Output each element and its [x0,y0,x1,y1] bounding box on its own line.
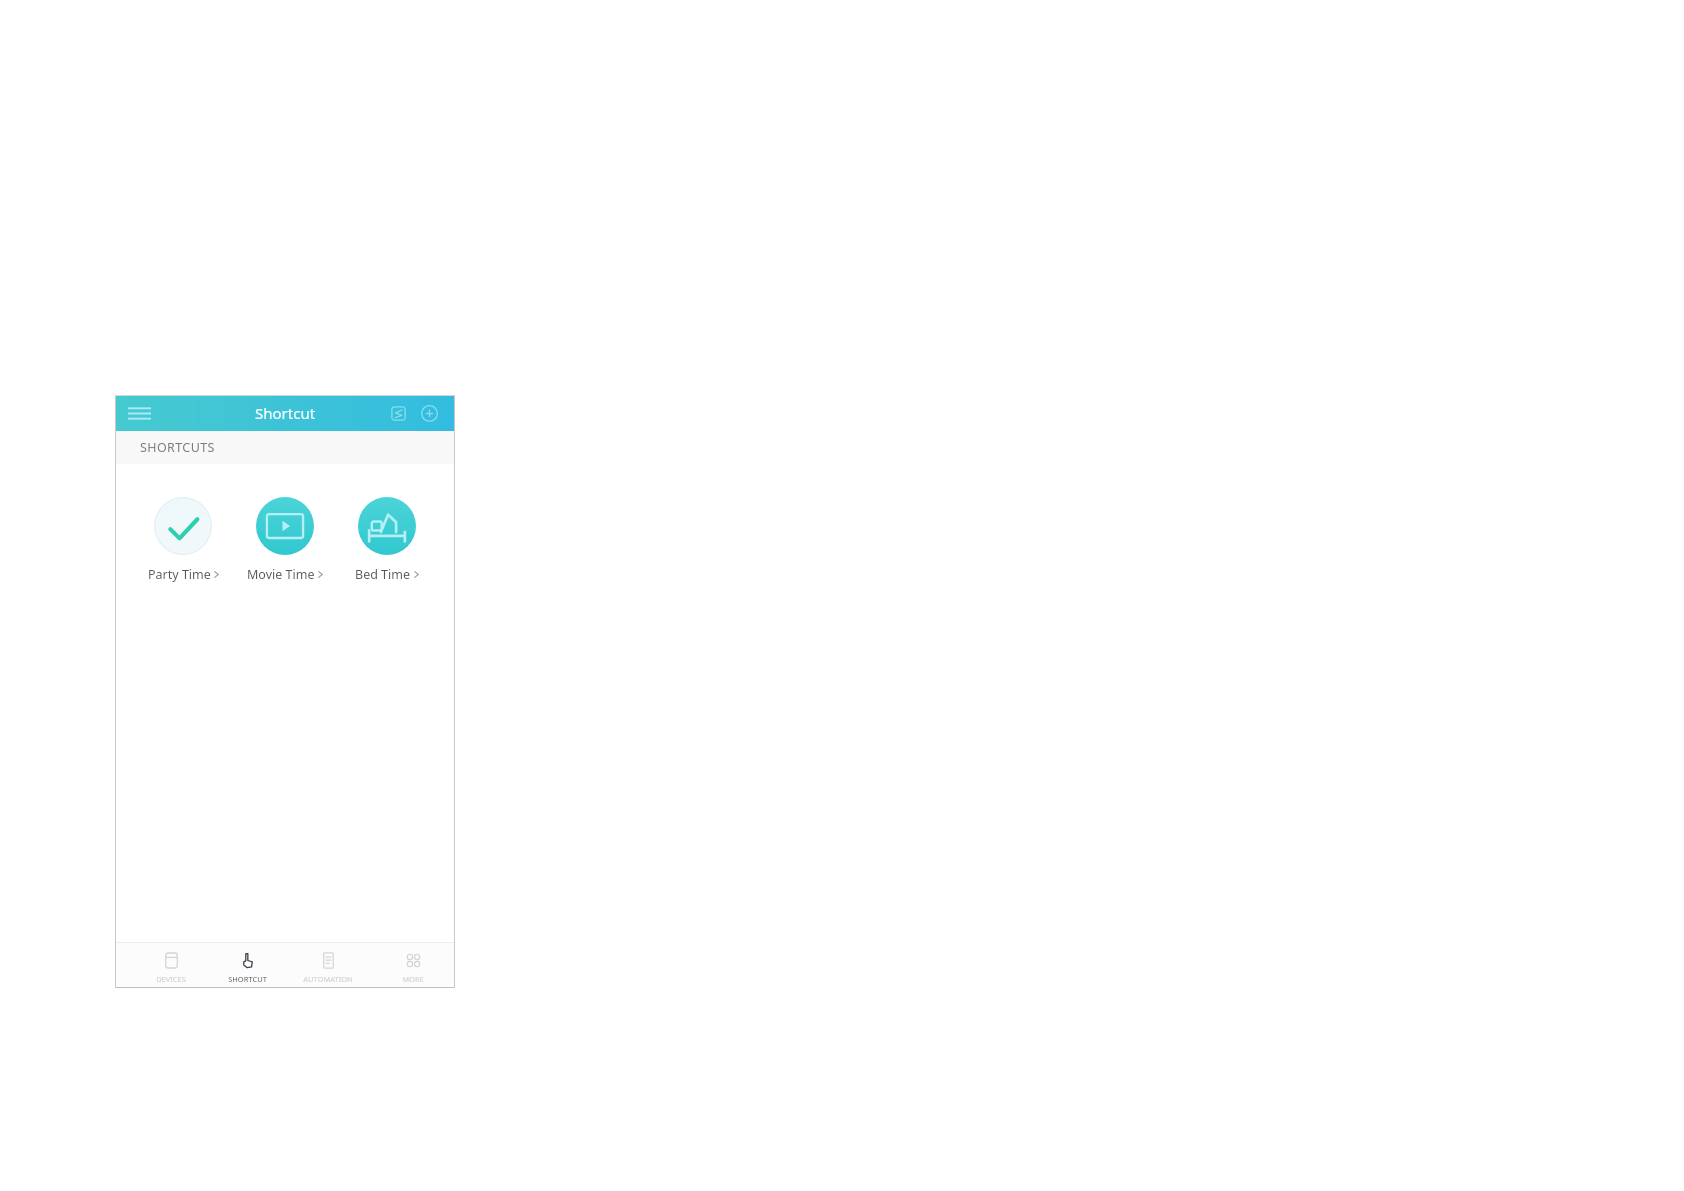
button[interactable]: Party Time [132,497,234,583]
button[interactable]: Add shortcut [417,401,442,426]
button[interactable]: AUTOMATION [290,947,366,989]
staticText: Party Time [148,566,211,583]
staticText: DEVICES [156,974,186,984]
staticText: AUTOMATION [303,974,353,984]
staticText: Shortcut [255,403,316,423]
staticText: Bed Time [355,566,411,583]
button[interactable]: Scenes [386,401,410,425]
staticText: SHORTCUT [228,974,267,984]
staticText: SHORTCUTS [140,439,215,456]
button[interactable]: Movie Time [234,497,336,583]
button[interactable]: Bed Time [336,497,438,583]
staticText: Movie Time [247,566,315,583]
button[interactable]: DEVICES [133,947,209,989]
button[interactable]: MORE [375,947,451,989]
staticText: MORE [402,974,424,984]
button[interactable]: Menu [126,400,152,426]
button[interactable]: SHORTCUT [209,947,285,989]
